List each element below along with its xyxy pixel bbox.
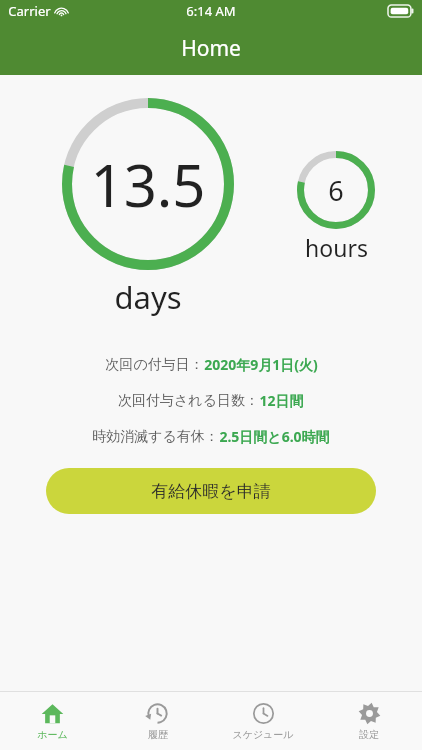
staticText: 有給休暇を申請 (151, 481, 271, 502)
staticText: 次回の付与日： (105, 356, 204, 374)
button[interactable]: 履歴 (105, 702, 210, 741)
staticText: Carrier (8, 2, 51, 20)
button[interactable]: ホーム (0, 702, 105, 741)
staticText: 6 (328, 172, 344, 209)
button[interactable]: 有給休暇を申請 (46, 468, 376, 514)
staticText: days (114, 276, 182, 318)
staticText: 2020年9月1日(火) (204, 355, 318, 374)
button[interactable]: スケジュール (210, 702, 316, 741)
staticText: hours (305, 232, 368, 263)
staticText: 次回付与される日数： (118, 392, 259, 410)
staticText: Home (181, 34, 241, 63)
button[interactable]: 設定 (316, 702, 422, 741)
staticText: 13.5 (90, 145, 206, 224)
staticText: 設定 (359, 728, 379, 741)
staticText: ホーム (37, 728, 68, 741)
staticText: 12日間 (259, 391, 304, 410)
staticText: 履歴 (148, 728, 168, 741)
staticText: スケジュール (232, 728, 294, 741)
staticText: 6:14 AM (186, 2, 236, 20)
staticText: 時効消滅する有休： (92, 428, 219, 446)
staticText: 2.5日間と6.0時間 (219, 427, 330, 446)
